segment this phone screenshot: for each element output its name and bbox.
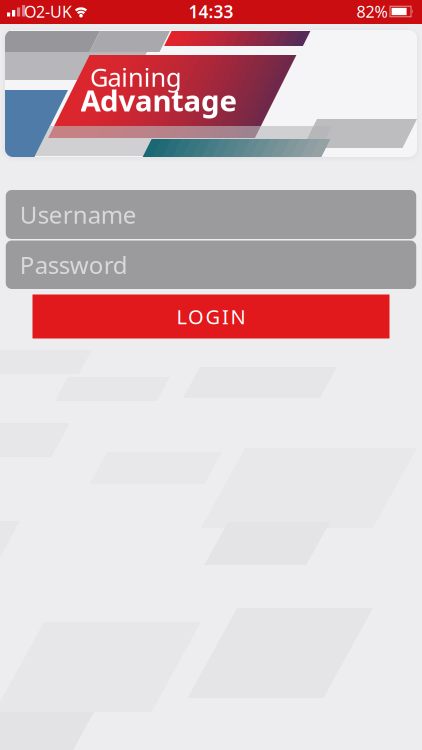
- button[interactable]: Username: [6, 190, 416, 239]
- staticText: LOGIN: [176, 303, 245, 330]
- staticText: Advantage: [80, 80, 237, 119]
- staticText: Password: [20, 249, 128, 281]
- staticText: 82%: [356, 1, 387, 22]
- button[interactable]: Password: [6, 240, 416, 289]
- staticText: 14:33: [188, 0, 233, 23]
- button[interactable]: LOGIN: [32, 294, 389, 338]
- staticText: Gaining: [90, 60, 182, 94]
- staticText: O2-UK: [24, 1, 72, 22]
- staticText: Username: [20, 199, 137, 230]
